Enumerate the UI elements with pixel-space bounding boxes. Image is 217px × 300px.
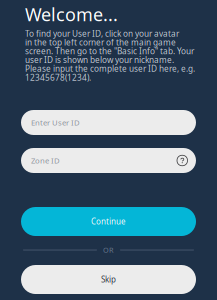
button[interactable]: Skip <box>21 265 196 294</box>
staticText: OR <box>103 245 114 255</box>
staticText: Continue <box>91 216 126 227</box>
staticText: Welcome... <box>25 2 118 26</box>
button[interactable]: Zone ID help <box>176 155 188 166</box>
staticText: Zone ID <box>31 155 60 166</box>
staticText: To find your User ID, click on your avat… <box>25 28 195 83</box>
staticText: Skip <box>101 274 116 285</box>
staticText: Enter User ID <box>31 117 80 128</box>
button[interactable]: Continue <box>21 207 196 236</box>
